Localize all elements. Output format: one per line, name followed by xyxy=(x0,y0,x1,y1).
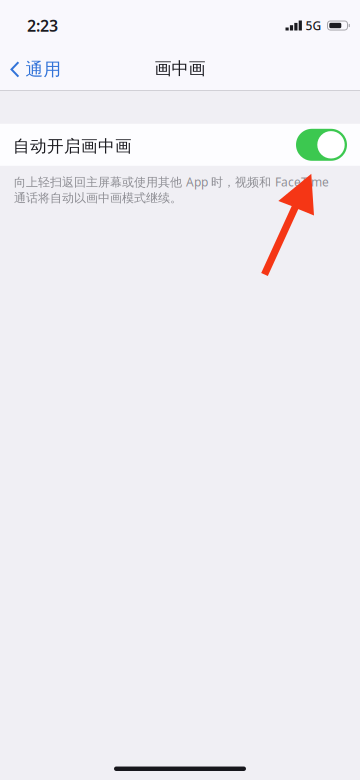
staticText: 通话将自动以画中画模式继续。 xyxy=(14,191,182,205)
staticText: 2:23 xyxy=(27,15,58,36)
staticText: 通用 xyxy=(26,58,62,81)
staticText: 画中画 xyxy=(154,58,205,79)
button[interactable]: 通用 xyxy=(0,44,70,90)
button[interactable]: 自动开启画中画 xyxy=(0,124,360,166)
staticText: 5G xyxy=(305,17,321,33)
staticText: 自动开启画中画 xyxy=(13,136,132,157)
staticText: 向上轻扫返回主屏幕或使用其他 App 时，视频和 FaceTime xyxy=(14,174,329,190)
